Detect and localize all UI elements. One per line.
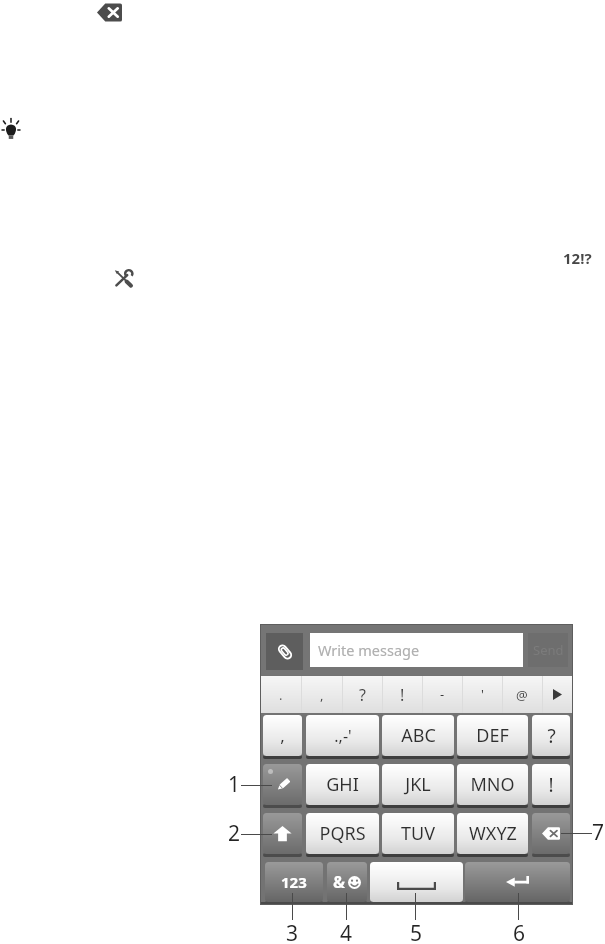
staticText: . bbox=[279, 686, 283, 704]
button[interactable]: WXYZ bbox=[457, 813, 528, 854]
staticText: PQRS bbox=[319, 821, 366, 846]
button[interactable]: Symbols bbox=[327, 862, 367, 902]
staticText: ! bbox=[400, 684, 405, 706]
button[interactable]: Voice input bbox=[263, 764, 302, 805]
button[interactable]: ! bbox=[382, 676, 422, 713]
button[interactable]: ABC bbox=[382, 715, 454, 756]
staticText: WXYZ bbox=[469, 821, 517, 846]
button[interactable]: Delete bbox=[532, 813, 570, 854]
staticText: ! bbox=[548, 772, 554, 798]
button[interactable]: More symbols bbox=[542, 676, 573, 713]
staticText: 1 bbox=[228, 770, 241, 799]
staticText: ABC bbox=[401, 723, 436, 748]
staticText: .,-' bbox=[334, 725, 352, 747]
button[interactable]: ! bbox=[532, 764, 570, 805]
staticText: ? bbox=[547, 723, 556, 749]
staticText: - bbox=[440, 685, 445, 703]
staticText: 6 bbox=[513, 919, 526, 944]
staticText: 3 bbox=[286, 919, 299, 944]
staticText: ' bbox=[481, 685, 484, 703]
button[interactable]: .,-' bbox=[306, 715, 379, 756]
button[interactable]: Write message bbox=[310, 633, 523, 667]
button[interactable]: @ bbox=[502, 676, 542, 713]
button[interactable]: ? bbox=[342, 676, 382, 713]
button[interactable]: - bbox=[422, 676, 462, 713]
staticText: MNO bbox=[470, 772, 515, 797]
staticText: 123 bbox=[281, 872, 307, 892]
button[interactable]: PQRS bbox=[306, 813, 379, 854]
staticText: @ bbox=[516, 686, 528, 704]
button[interactable]: DEF bbox=[457, 715, 528, 756]
button[interactable]: Attach bbox=[266, 633, 303, 670]
staticText: TUV bbox=[401, 821, 435, 846]
button[interactable]: MNO bbox=[457, 764, 528, 805]
staticText: 5 bbox=[410, 919, 423, 944]
button[interactable]: . bbox=[260, 676, 301, 713]
button[interactable]: ? bbox=[532, 715, 570, 756]
button[interactable]: Space bbox=[370, 862, 463, 902]
staticText: 2 bbox=[228, 819, 241, 848]
staticText: , bbox=[280, 724, 285, 747]
button[interactable]: , bbox=[301, 676, 342, 713]
button[interactable]: GHI bbox=[306, 764, 379, 805]
staticText: Write message bbox=[318, 640, 420, 660]
button[interactable]: ' bbox=[462, 676, 502, 713]
button[interactable]: TUV bbox=[382, 813, 454, 854]
staticText: & bbox=[333, 871, 346, 893]
staticText: ? bbox=[359, 684, 366, 706]
staticText: Send bbox=[533, 641, 564, 659]
staticText: 12!? bbox=[563, 248, 592, 268]
button[interactable]: Numbers bbox=[265, 862, 323, 902]
staticText: 4 bbox=[340, 919, 353, 944]
staticText: , bbox=[320, 686, 324, 704]
button[interactable]: Enter bbox=[465, 862, 570, 902]
staticText: DEF bbox=[476, 723, 509, 748]
staticText: GHI bbox=[326, 772, 359, 797]
button[interactable]: , bbox=[263, 715, 302, 756]
staticText: 7 bbox=[592, 818, 605, 847]
button[interactable]: JKL bbox=[382, 764, 454, 805]
button[interactable]: Shift bbox=[263, 813, 302, 854]
staticText: JKL bbox=[405, 772, 431, 797]
